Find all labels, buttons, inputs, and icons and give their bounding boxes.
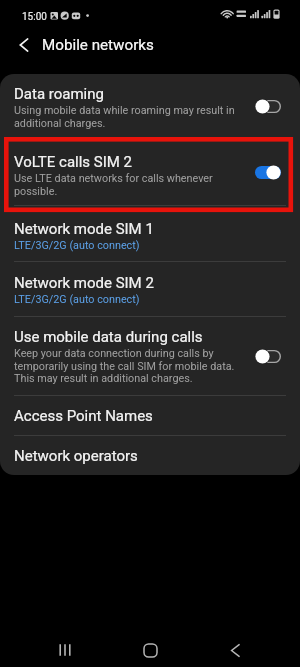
staticText: Data roaming bbox=[14, 85, 104, 103]
button[interactable]: VoLTE calls SIM 2 bbox=[0, 139, 300, 205]
staticText: Network mode SIM 1 bbox=[14, 220, 154, 238]
staticText: Using mobile data while roaming may resu… bbox=[14, 104, 235, 129]
staticText: Mobile networks bbox=[42, 36, 154, 54]
staticText: 15:00 bbox=[22, 11, 47, 23]
staticText: VoLTE calls SIM 2 bbox=[14, 153, 133, 171]
staticText: Use mobile data during calls bbox=[14, 328, 203, 346]
staticText: LTE/3G/2G (auto connect) bbox=[14, 239, 140, 252]
staticText: Network operators bbox=[14, 447, 138, 465]
button[interactable]: Toggle off bbox=[255, 349, 281, 364]
button[interactable]: Network operators bbox=[0, 436, 300, 475]
button[interactable]: Network mode SIM 2 bbox=[0, 262, 300, 316]
button[interactable]: Recent apps bbox=[45, 630, 85, 667]
staticText: Keep your data connection during calls b… bbox=[14, 347, 235, 384]
staticText: Access Point Names bbox=[14, 407, 153, 425]
button[interactable]: Data roaming bbox=[0, 74, 300, 139]
button[interactable]: Toggle off bbox=[255, 99, 281, 114]
staticText: LTE/3G/2G (auto connect) bbox=[14, 293, 140, 306]
button[interactable]: Toggle on bbox=[255, 165, 281, 180]
button[interactable]: Use mobile data during calls bbox=[0, 317, 300, 395]
button[interactable]: Home bbox=[130, 630, 170, 667]
staticText: Use LTE data networks for calls whenever… bbox=[14, 172, 213, 197]
button[interactable]: Back bbox=[215, 630, 255, 667]
button[interactable]: Back bbox=[10, 31, 38, 59]
button[interactable]: Network mode SIM 1 bbox=[0, 206, 300, 261]
staticText: Network mode SIM 2 bbox=[14, 274, 154, 292]
button[interactable]: Access Point Names bbox=[0, 396, 300, 435]
